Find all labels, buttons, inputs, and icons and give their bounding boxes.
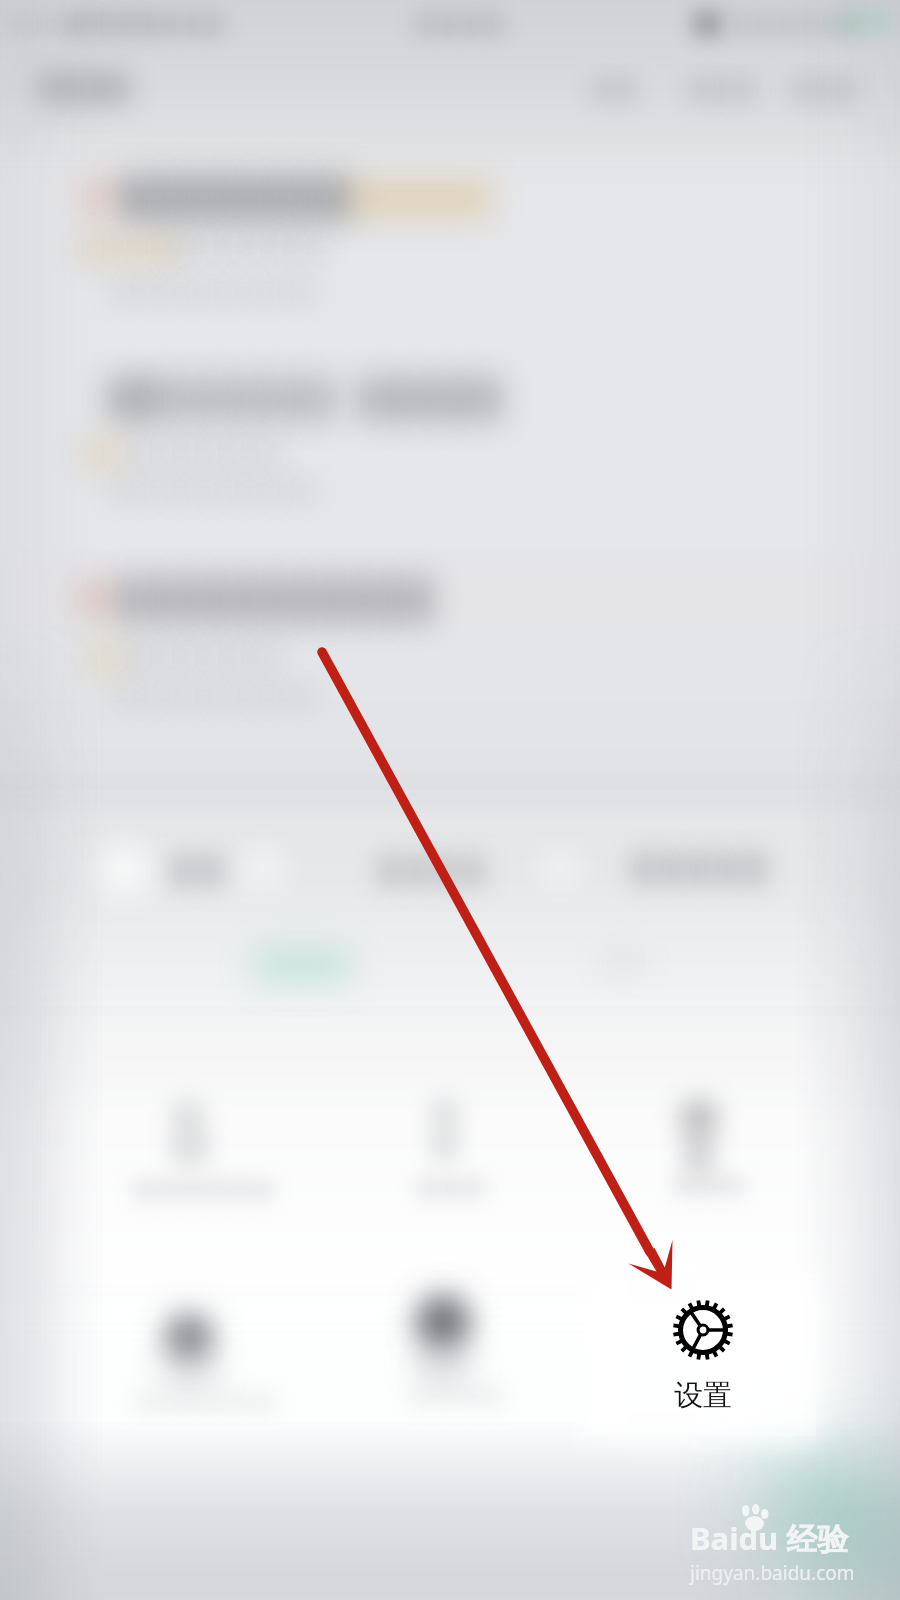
staticText: 设置 xyxy=(674,1377,732,1414)
button[interactable]: 设置 xyxy=(584,1274,816,1436)
staticText: jingyan.baidu.com xyxy=(690,1560,855,1586)
staticText: Baidu 经验 xyxy=(690,1517,849,1559)
